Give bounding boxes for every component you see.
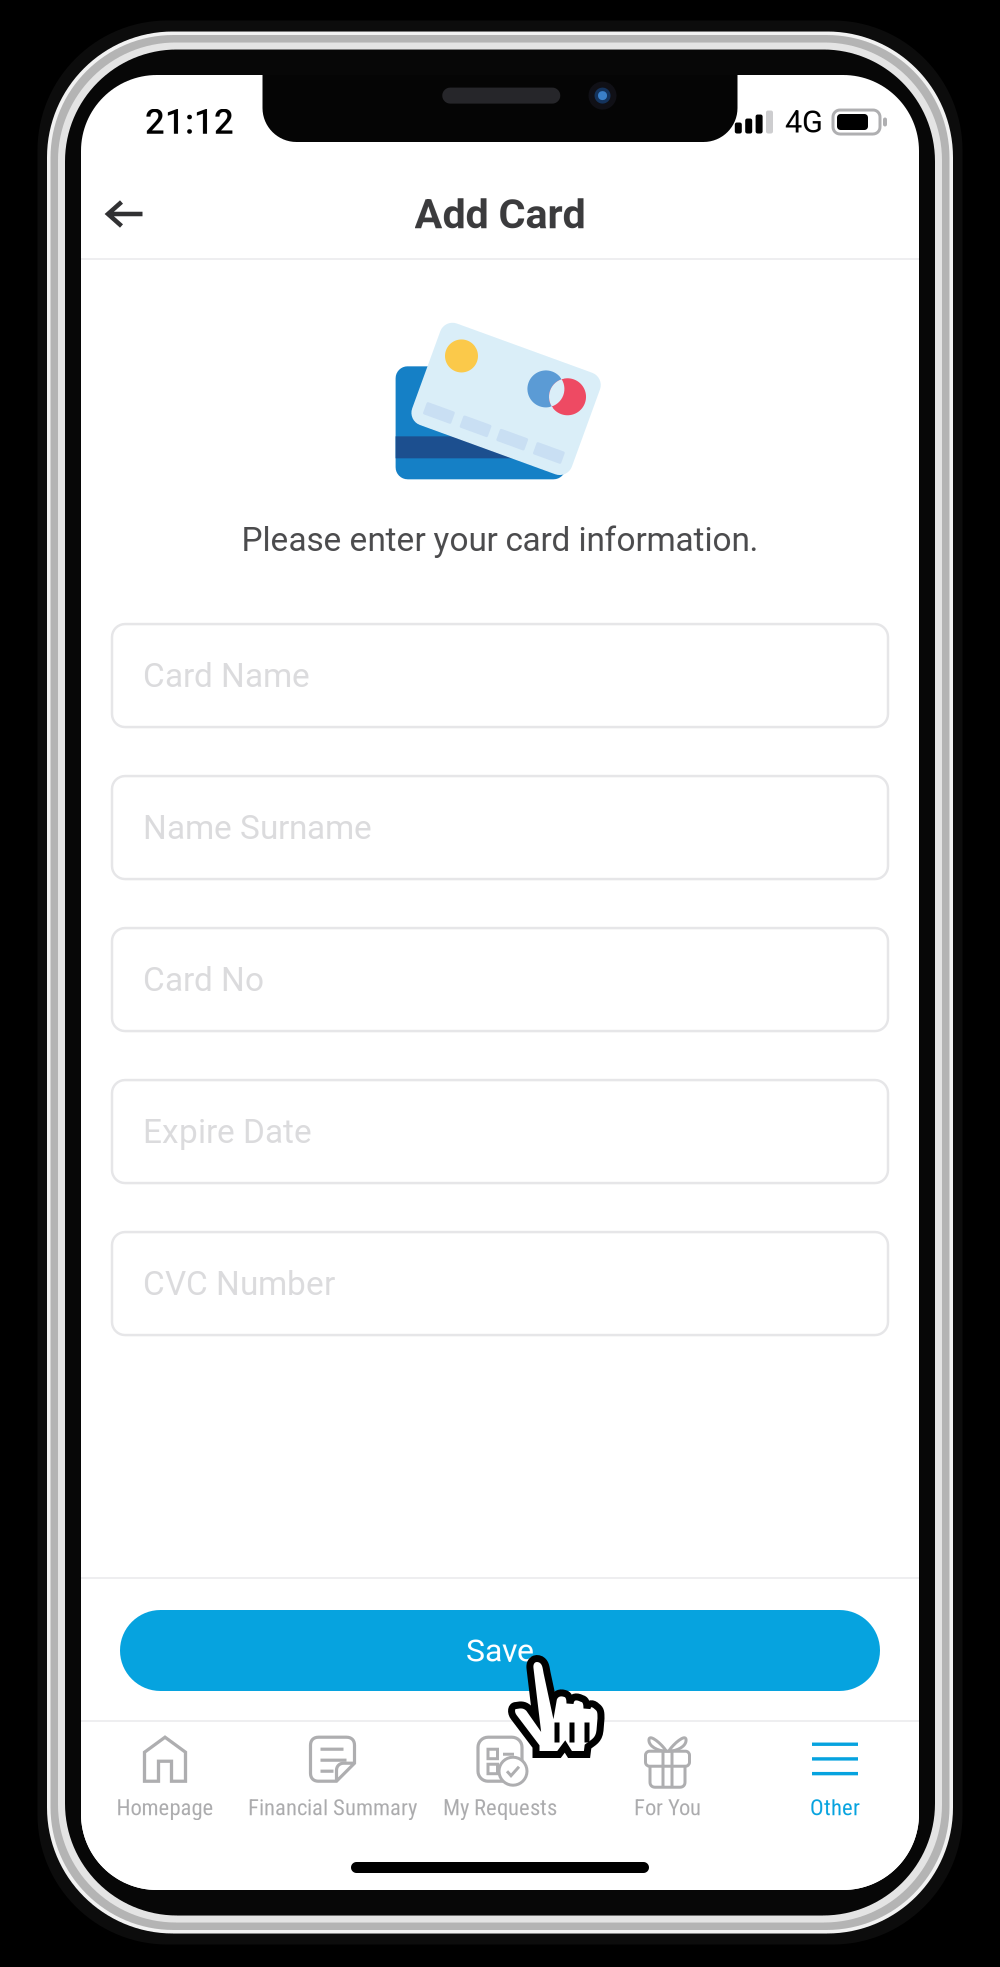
staticText: Name Surname: [143, 808, 372, 847]
staticText: Card No: [143, 960, 264, 999]
button[interactable]: Save: [120, 1610, 880, 1691]
staticText: For You: [634, 1794, 701, 1821]
staticText: 4G: [785, 104, 823, 140]
button[interactable]: For You: [584, 1729, 751, 1827]
button[interactable]: Name Surname: [112, 776, 888, 879]
staticText: Financial Summary: [248, 1794, 417, 1821]
button[interactable]: Expire Date: [112, 1080, 888, 1183]
button[interactable]: Other: [751, 1729, 919, 1827]
staticText: 21:12: [145, 102, 234, 142]
button[interactable]: Homepage: [81, 1729, 249, 1827]
staticText: CVC Number: [143, 1264, 335, 1303]
button[interactable]: Financial Summary: [249, 1729, 416, 1827]
staticText: Add Card: [414, 190, 585, 238]
button[interactable]: My Requests: [416, 1729, 584, 1827]
staticText: My Requests: [443, 1794, 557, 1821]
button[interactable]: Card No: [112, 928, 888, 1031]
staticText: Please enter your card information.: [241, 520, 758, 559]
staticText: Expire Date: [143, 1112, 312, 1151]
staticText: Save: [466, 1632, 534, 1669]
staticText: Other: [810, 1794, 860, 1821]
button[interactable]: Card Name: [112, 624, 888, 727]
button[interactable]: Back: [81, 170, 169, 258]
staticText: Homepage: [116, 1794, 213, 1821]
button[interactable]: CVC Number: [112, 1232, 888, 1335]
staticText: Card Name: [143, 656, 310, 695]
